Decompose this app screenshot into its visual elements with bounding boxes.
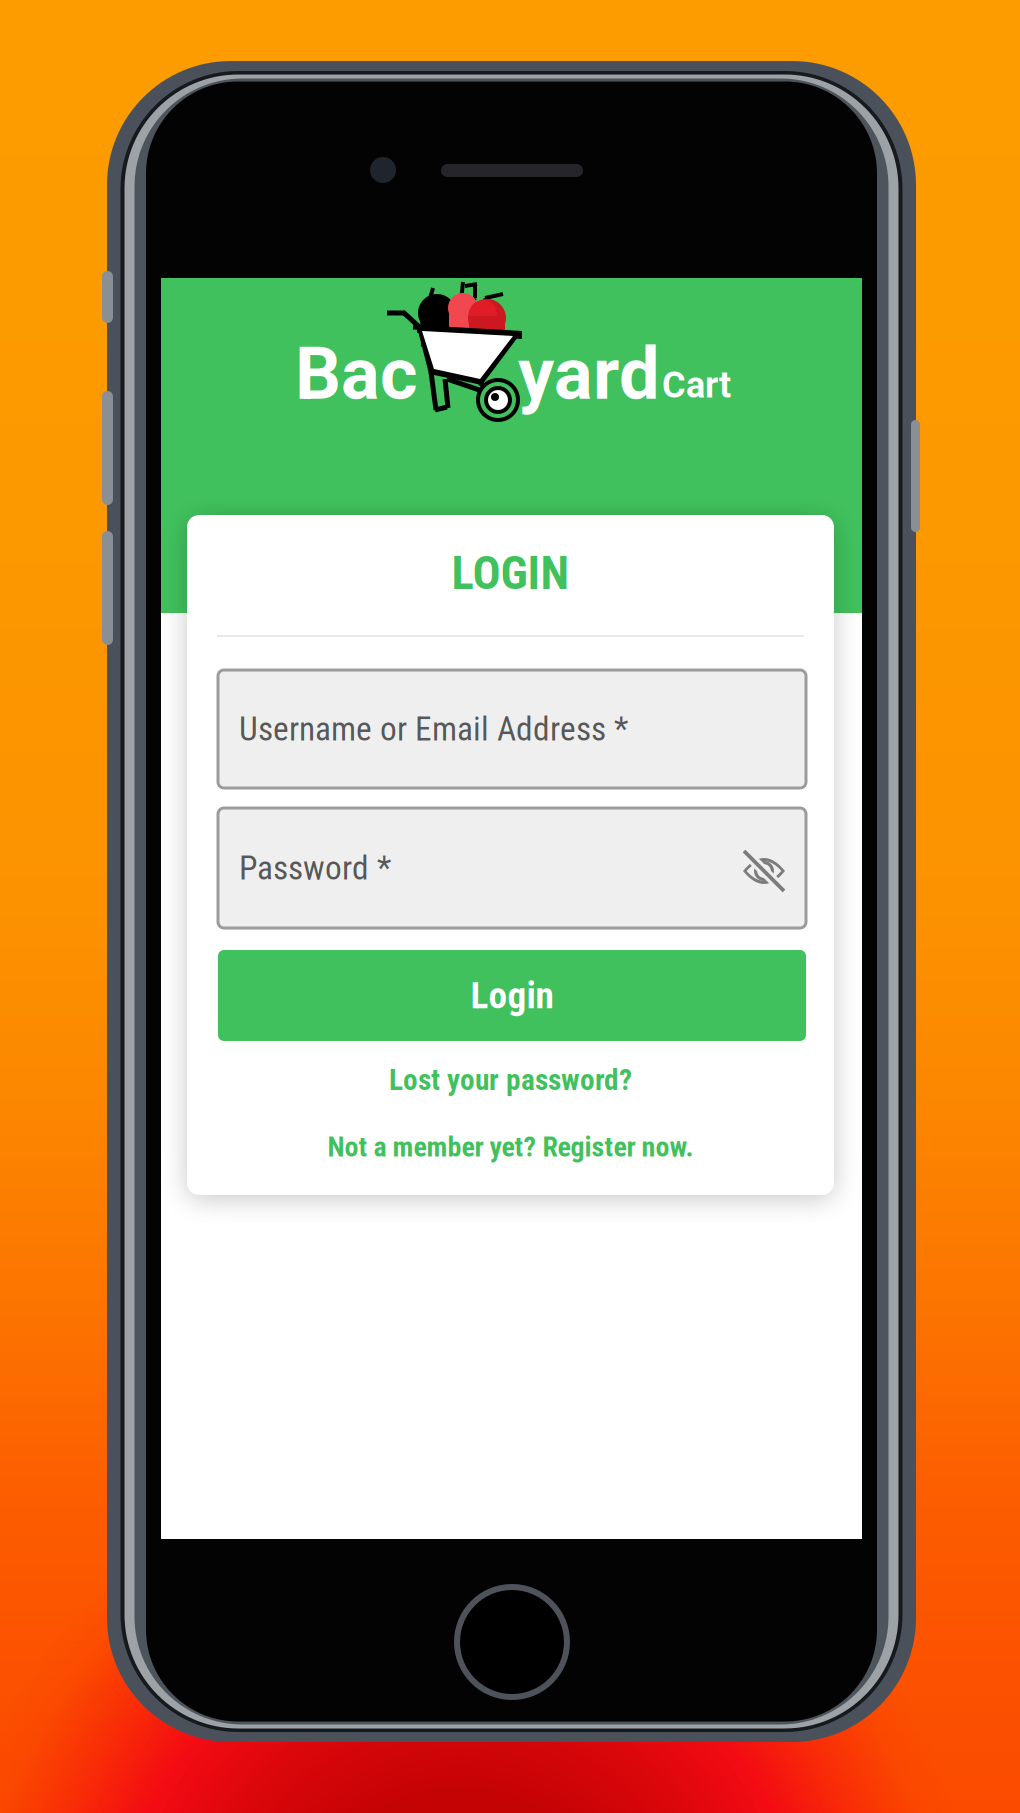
staticText: Cart: [662, 364, 731, 406]
staticText: Password *: [239, 848, 391, 888]
staticText: Username or Email Address *: [239, 709, 628, 749]
staticText: Bac: [295, 332, 418, 416]
staticText: yard: [518, 332, 660, 416]
staticText: Lost your password?: [389, 1063, 632, 1097]
button[interactable]: Show password: [733, 840, 795, 902]
button[interactable]: Username or Email Address *: [218, 670, 806, 788]
staticText: Login: [470, 974, 553, 1017]
button[interactable]: Not a member yet? Register now.: [187, 1125, 834, 1169]
staticText: Not a member yet? Register now.: [327, 1131, 693, 1163]
button[interactable]: Lost your password?: [187, 1058, 834, 1102]
button[interactable]: Login: [218, 950, 806, 1041]
staticText: LOGIN: [451, 546, 569, 600]
button[interactable]: Password *: [218, 808, 806, 928]
